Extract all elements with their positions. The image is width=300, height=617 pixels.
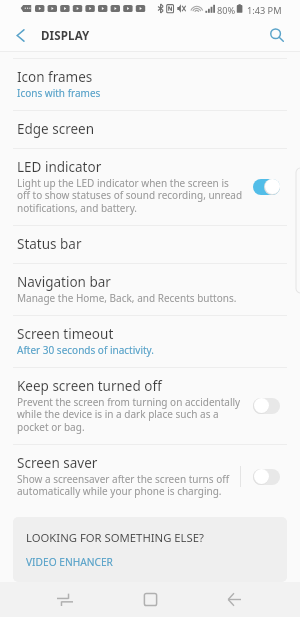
button[interactable]: Screen saver — [0, 445, 300, 508]
button[interactable]: Turn on — [253, 468, 280, 485]
button[interactable]: LOOKING FOR SOMETHING ELSE? — [13, 517, 287, 582]
staticText: 80% — [217, 4, 236, 17]
staticText: Status bar — [17, 235, 82, 253]
staticText: Icons with frames — [17, 86, 101, 100]
button[interactable]: Screen timeout — [0, 316, 300, 367]
button[interactable]: Recent apps — [40, 582, 90, 617]
button[interactable]: Keep screen turned off — [0, 368, 300, 444]
staticText: Screen saver — [17, 454, 98, 472]
button[interactable]: Status bar — [0, 226, 300, 263]
staticText: Prevent the screen from turning on accid… — [17, 395, 241, 434]
button[interactable]: Edge screen — [0, 111, 300, 148]
staticText: Edge screen — [17, 120, 95, 138]
staticText: Icon frames — [17, 68, 93, 86]
staticText: 1:43 PM — [247, 4, 282, 17]
staticText: Navigation bar — [17, 273, 111, 291]
staticText: Manage the Home, Back, and Recents butto… — [17, 291, 237, 305]
button[interactable]: Navigation bar — [0, 264, 300, 315]
button[interactable]: Turn on — [253, 397, 280, 414]
button[interactable]: LED indicator — [0, 149, 300, 225]
button[interactable]: Home — [125, 582, 175, 617]
staticText: Show a screensaver after the screen turn… — [17, 472, 230, 498]
button[interactable]: Navigate up — [4, 19, 36, 51]
button[interactable]: Turn off — [253, 178, 280, 195]
button[interactable]: Back — [209, 582, 259, 617]
button[interactable]: Icon frames — [0, 59, 300, 110]
staticText: After 30 seconds of inactivity. — [17, 343, 154, 357]
button[interactable]: Search — [261, 19, 293, 51]
staticText: VIDEO ENHANCER — [26, 555, 113, 568]
staticText: Screen timeout — [17, 325, 114, 343]
staticText: LOOKING FOR SOMETHING ELSE? — [26, 530, 204, 545]
staticText: DISPLAY — [41, 28, 90, 44]
staticText: Light up the LED indicator when the scre… — [17, 176, 243, 215]
staticText: LED indicator — [17, 158, 102, 176]
staticText: Keep screen turned off — [17, 377, 162, 395]
